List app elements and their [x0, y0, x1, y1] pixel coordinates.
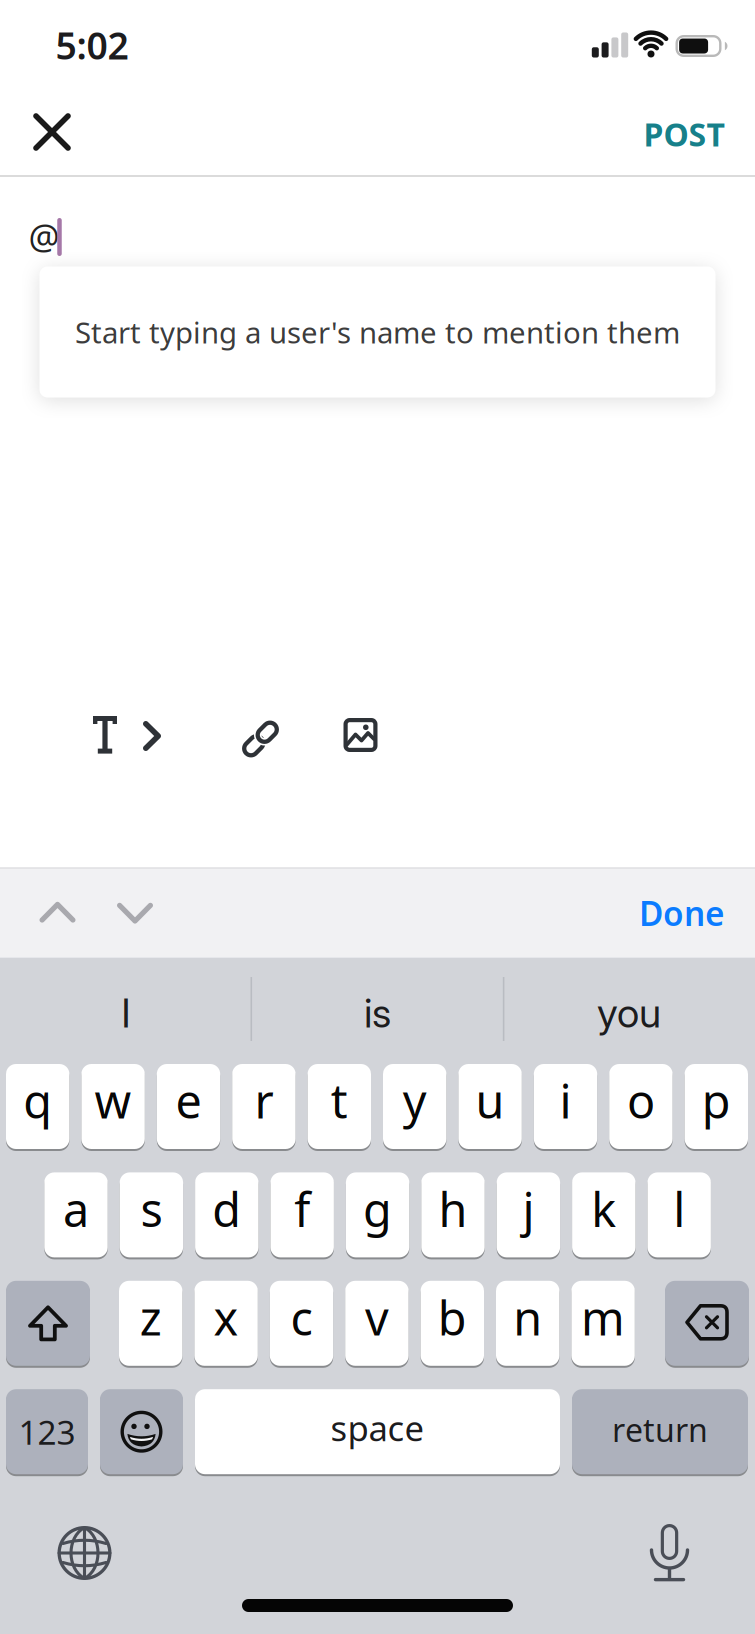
button[interactable]: l	[647, 1172, 711, 1257]
staticText: q	[23, 1069, 52, 1131]
staticText: j	[522, 1178, 534, 1240]
staticText: w	[95, 1069, 132, 1131]
staticText: I	[121, 989, 130, 1037]
button[interactable]: 123	[6, 1389, 88, 1474]
staticText: a	[63, 1178, 89, 1240]
button[interactable]: o	[609, 1064, 673, 1149]
button[interactable]	[100, 1389, 183, 1474]
button[interactable]	[57, 1526, 111, 1580]
button[interactable]: t	[308, 1064, 371, 1149]
staticText: i	[559, 1069, 571, 1131]
button[interactable]	[649, 1521, 689, 1581]
button[interactable]: j	[497, 1172, 560, 1257]
staticText: @	[28, 213, 59, 259]
button[interactable]: POST	[643, 113, 724, 155]
button[interactable]: z	[119, 1281, 182, 1366]
staticText: r	[254, 1069, 273, 1131]
button[interactable]: w	[81, 1064, 145, 1149]
staticText: y	[403, 1069, 427, 1131]
staticText: p	[702, 1069, 731, 1131]
button[interactable]: v	[345, 1281, 409, 1366]
button[interactable]: you	[509, 973, 749, 1053]
button[interactable]: u	[458, 1064, 522, 1149]
button[interactable]: a	[44, 1172, 108, 1257]
staticText: Done	[639, 891, 725, 935]
button[interactable]: y	[383, 1064, 446, 1149]
staticText: 5:02	[55, 20, 128, 70]
button[interactable]: is	[257, 973, 497, 1053]
button[interactable]: b	[421, 1281, 484, 1366]
staticText: h	[438, 1178, 467, 1240]
staticText: is	[364, 989, 391, 1037]
button[interactable]	[665, 1281, 749, 1366]
button[interactable]: x	[194, 1281, 258, 1366]
button[interactable]	[93, 716, 161, 756]
staticText: g	[363, 1178, 392, 1240]
button[interactable]: c	[270, 1281, 333, 1366]
staticText: c	[290, 1286, 312, 1348]
staticText: l	[673, 1178, 685, 1240]
button[interactable]: k	[572, 1172, 635, 1257]
button[interactable]: p	[685, 1064, 748, 1149]
button[interactable]: m	[571, 1281, 635, 1366]
button[interactable]: n	[496, 1281, 559, 1366]
staticText: you	[597, 989, 661, 1037]
staticText: x	[214, 1286, 239, 1348]
button[interactable]: e	[157, 1064, 220, 1149]
staticText: 123	[18, 1410, 75, 1454]
button[interactable]: f	[270, 1172, 334, 1257]
staticText: t	[331, 1069, 348, 1131]
staticText: k	[591, 1178, 616, 1240]
staticText: s	[140, 1178, 162, 1240]
button[interactable]	[6, 1281, 90, 1366]
staticText: f	[294, 1178, 310, 1240]
staticText: u	[476, 1069, 505, 1131]
button[interactable]	[33, 113, 71, 151]
button[interactable]	[343, 718, 377, 752]
button[interactable]	[241, 712, 279, 758]
staticText: o	[627, 1069, 655, 1131]
button[interactable]: q	[6, 1064, 69, 1149]
staticText: n	[513, 1286, 542, 1348]
button[interactable]: s	[120, 1172, 183, 1257]
staticText: m	[581, 1286, 625, 1348]
button[interactable]: space	[195, 1389, 560, 1474]
button[interactable]: d	[195, 1172, 258, 1257]
staticText: v	[365, 1286, 389, 1348]
staticText: space	[330, 1405, 424, 1451]
button[interactable]: g	[346, 1172, 409, 1257]
button[interactable]	[39, 901, 75, 923]
button[interactable]	[117, 902, 153, 924]
staticText: POST	[643, 113, 724, 155]
button[interactable]: I	[6, 973, 246, 1053]
button[interactable]: Done	[639, 891, 725, 935]
staticText: return	[612, 1408, 708, 1451]
staticText: z	[140, 1286, 162, 1348]
button[interactable]: return	[572, 1389, 748, 1474]
staticText: d	[212, 1178, 241, 1240]
button[interactable]: r	[232, 1064, 296, 1149]
staticText: e	[175, 1069, 201, 1131]
staticText: Start typing a user's name to mention th…	[75, 312, 680, 351]
button[interactable]: h	[421, 1172, 485, 1257]
button[interactable]: i	[534, 1064, 597, 1149]
staticText: b	[438, 1286, 467, 1348]
